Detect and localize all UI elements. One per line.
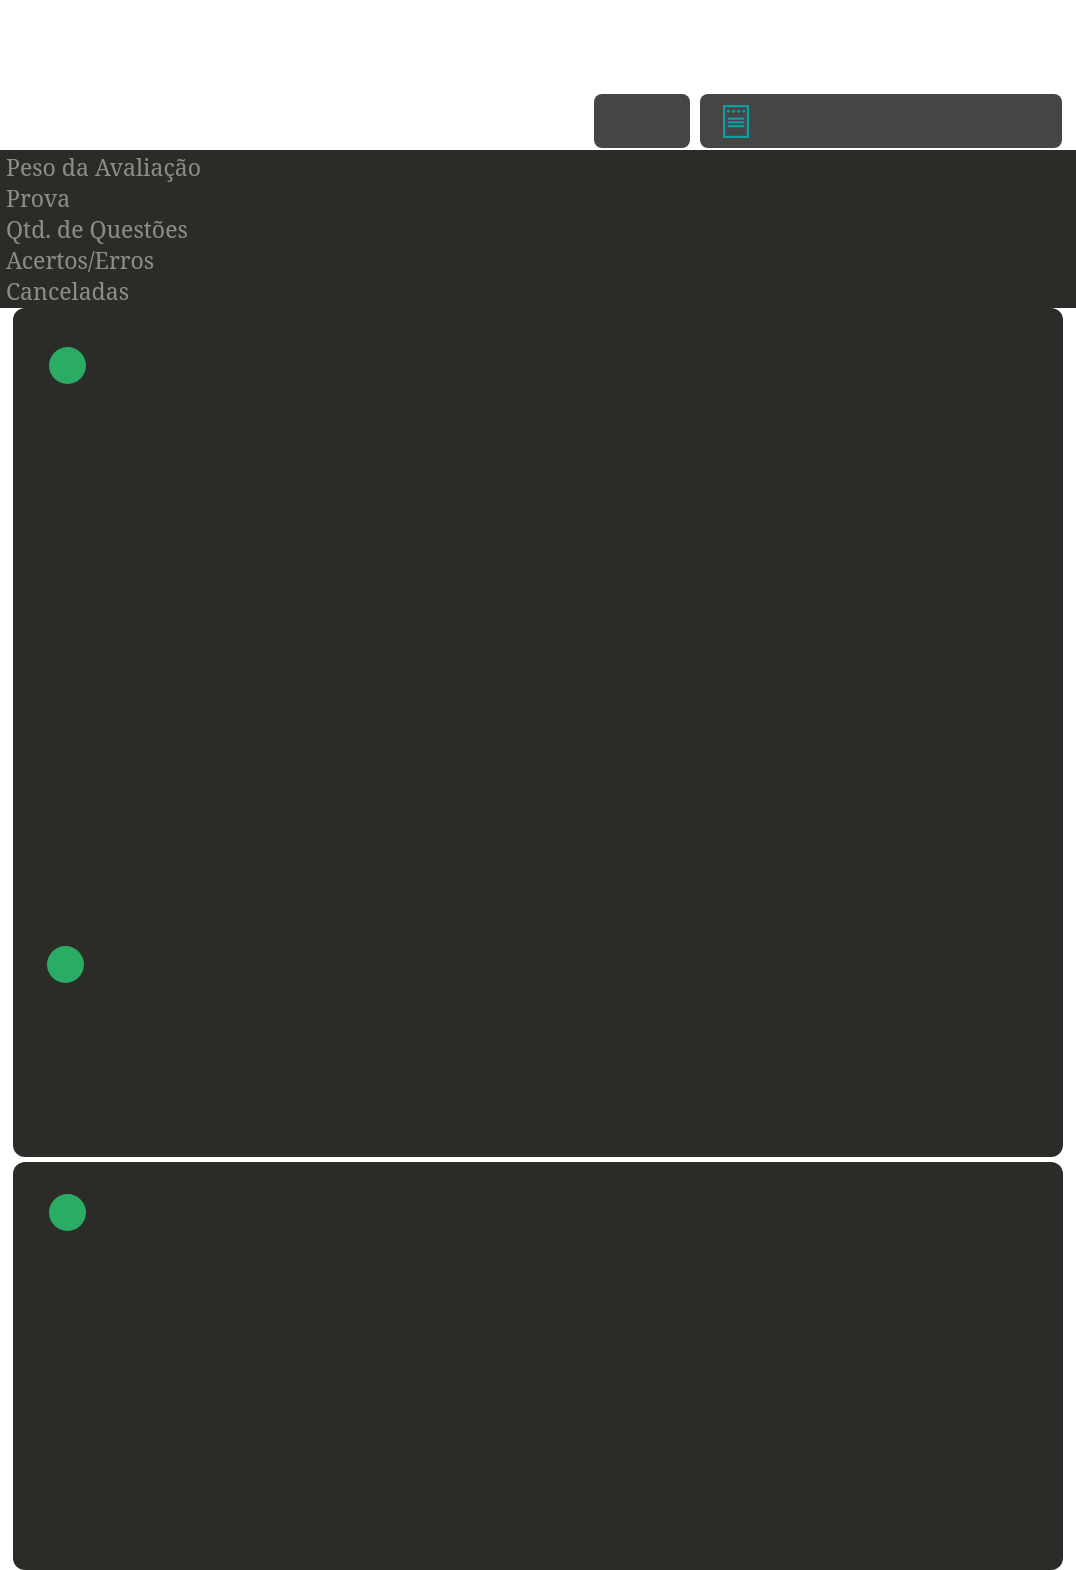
staticText: Prova bbox=[6, 182, 71, 213]
staticText: Qtd. de Questões bbox=[6, 213, 188, 244]
button[interactable]: Filtro bbox=[594, 94, 690, 148]
staticText: Acertos/Erros bbox=[6, 244, 155, 275]
button[interactable] bbox=[13, 1162, 1063, 1570]
button[interactable] bbox=[13, 308, 1063, 1157]
button[interactable]: Relatório bbox=[700, 94, 1062, 148]
staticText: Peso da Avaliação bbox=[6, 151, 201, 182]
staticText: Canceladas bbox=[6, 275, 130, 306]
